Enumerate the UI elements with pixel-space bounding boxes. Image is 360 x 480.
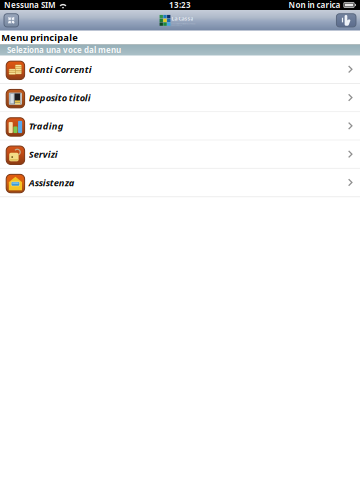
button[interactable]: Deposito titoli (0, 84, 360, 112)
staticText: Deposito titoli (29, 91, 91, 104)
staticText: Non in carica (288, 0, 340, 10)
staticText: Conti Correnti (29, 63, 92, 76)
button[interactable]: Menu (4, 14, 19, 27)
button[interactable]: Servizi (0, 141, 360, 169)
staticText: Trading (29, 120, 64, 132)
staticText: Nessuna SIM (4, 0, 56, 10)
staticText: Seleziona una voce dal menu (7, 45, 121, 55)
staticText: Menu principale (1, 31, 78, 44)
button[interactable]: Azioni (336, 14, 356, 27)
staticText: 13:23 (169, 0, 191, 10)
button[interactable]: Conti Correnti (0, 56, 360, 84)
button[interactable]: Trading (0, 112, 360, 141)
staticText: Servizi (29, 148, 58, 160)
staticText: CASSA DI RISPARMIO DI FOSSANO S.p.A. (171, 23, 195, 25)
staticText: Assistenza (29, 176, 75, 189)
button[interactable]: Assistenza (0, 169, 360, 197)
staticText: La Cassa (171, 15, 193, 22)
